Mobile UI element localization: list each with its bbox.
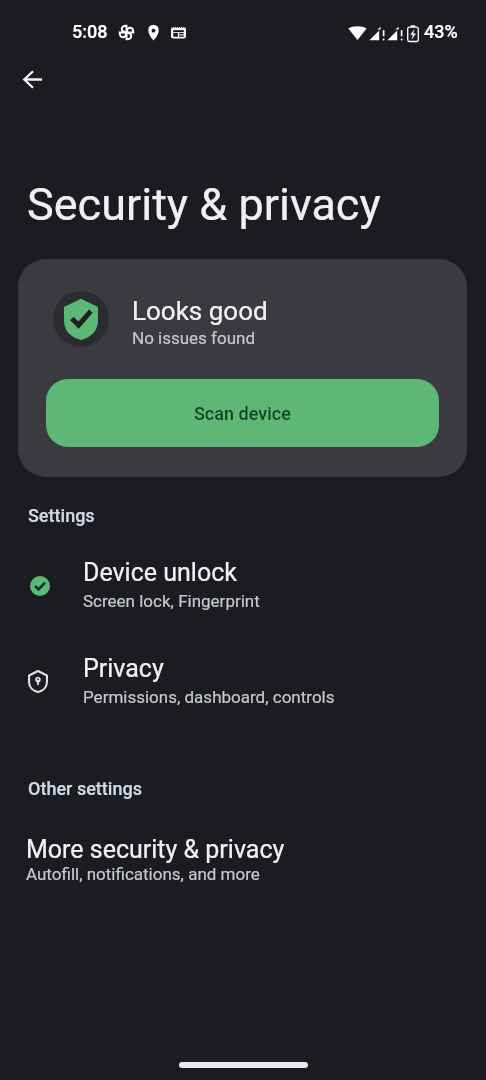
button[interactable]: Scan device — [46, 379, 439, 447]
staticText: Screen lock, Fingerprint — [83, 591, 260, 611]
staticText: Privacy — [83, 654, 164, 683]
staticText: Looks good — [132, 296, 268, 326]
staticText: Device unlock — [83, 558, 237, 587]
staticText: Scan device — [194, 403, 291, 424]
staticText: Settings — [28, 505, 95, 526]
staticText: 5:08 — [72, 21, 108, 42]
button[interactable]: Back — [9, 55, 57, 103]
staticText: More security & privacy — [26, 835, 285, 864]
staticText: Autofill, notifications, and more — [26, 864, 260, 884]
button[interactable]: Privacy — [0, 645, 486, 737]
staticText: No issues found — [132, 328, 256, 348]
staticText: Permissions, dashboard, controls — [83, 687, 335, 707]
staticText: Other settings — [28, 778, 142, 799]
staticText: Security & privacy — [27, 178, 381, 231]
button[interactable]: Device unlock — [0, 549, 486, 641]
button[interactable]: More security & privacy — [0, 826, 486, 896]
staticText: 43% — [424, 21, 458, 42]
